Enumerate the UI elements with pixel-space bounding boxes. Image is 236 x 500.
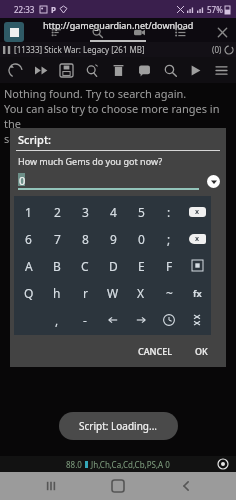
button[interactable]: Delete [107,59,129,81]
staticText: C [81,258,89,274]
staticText: http://gameguardian.net/download [43,19,194,31]
button[interactable]: Search [159,59,181,81]
button[interactable]: OK [187,341,216,361]
button[interactable]: Search [87,22,107,42]
button[interactable]: Key ; [155,225,183,252]
button[interactable]: App icon [4,22,24,42]
button[interactable]: Close [212,22,232,42]
button[interactable]: Key 9 [99,225,127,252]
button[interactable]: Forward [30,59,52,81]
staticText: F [166,258,173,274]
button[interactable]: Key 0 [127,225,155,252]
staticText: You can also try to choose more ranges i… [4,101,236,131]
button[interactable]: Key : [155,198,183,225]
staticText: [11333] Stick War: Legacy [261 MB] [14,44,145,55]
staticText: X [137,285,145,301]
staticText: (0) [212,44,222,55]
button[interactable]: Key 3 [71,198,99,225]
button[interactable]: Backspace [183,225,211,252]
staticText: Script: [18,132,52,147]
button[interactable]: Key W [99,279,127,306]
staticText: fx [193,287,202,299]
staticText: 0 [138,231,145,247]
button[interactable]: Visibility [218,459,228,469]
button[interactable]: CANCEL [130,341,181,361]
staticText: : [167,204,171,220]
button[interactable]: Dropdown [207,175,220,188]
button[interactable]: Edit [133,59,155,81]
button[interactable]: Collapse [183,306,211,333]
button[interactable]: Sort [46,22,66,42]
staticText: W [107,285,119,301]
staticText: Script: Loading... [79,419,158,433]
button[interactable]: Home [101,472,135,500]
staticText: OK [195,345,208,357]
staticText: r [83,285,88,301]
staticText: 0 [19,173,26,186]
staticText: B [53,258,61,274]
button[interactable]: Key 5 [127,198,155,225]
staticText: 8 [82,231,89,247]
button[interactable]: Backspace [183,198,211,225]
button[interactable]: Move right [127,306,155,333]
staticText: E [138,258,145,274]
staticText: Nothing found. Try to search again. [4,86,187,101]
staticText: 7 [54,231,61,247]
staticText: Find Tap Now [58,302,178,328]
staticText: Jh,Ch,Ca,Cd,Cb,PS,A 0 [91,459,170,470]
button[interactable]: Key F [155,252,183,279]
button[interactable]: Back [169,472,203,500]
button[interactable]: Select all [183,252,211,279]
staticText: 6 [25,231,32,247]
button[interactable]: Key B [43,252,71,279]
staticText: ; [167,231,171,247]
staticText: 3 [82,204,89,220]
staticText: 22:33 [14,4,35,15]
button[interactable]: Key h [43,279,71,306]
button[interactable]: Key C [71,252,99,279]
staticText: 4 [110,204,117,220]
button[interactable]: Refine search [81,59,103,81]
staticText: Tap to find values [81,334,155,346]
staticText: settings tab. [4,131,68,146]
button[interactable]: Play [184,59,206,81]
button[interactable]: Key - [71,306,99,333]
button[interactable]: Key 4 [99,198,127,225]
button[interactable]: Video [129,22,149,42]
button[interactable]: Key r [71,279,99,306]
button[interactable]: Move left [99,306,127,333]
button[interactable]: Key A [14,252,43,279]
button[interactable]: Key ~ [155,279,183,306]
staticText: CANCEL [138,345,173,357]
staticText: P [51,4,56,15]
button[interactable]: Key 7 [43,225,71,252]
button[interactable]: History [155,306,183,333]
staticText: Q [24,285,34,301]
staticText: , [55,312,59,328]
button[interactable]: Undo [4,59,26,81]
staticText: 5 [138,204,145,220]
staticText: A [25,258,33,274]
button[interactable]: Key Q [14,279,43,306]
staticText: ~ [166,285,173,301]
staticText: 2 [54,204,61,220]
button[interactable]: Save [55,59,77,81]
button[interactable]: Key 6 [14,225,43,252]
button[interactable]: Key 2 [43,198,71,225]
button[interactable]: Key fx [183,279,211,306]
staticText: 9 [110,231,117,247]
staticText: 88.0 [66,459,82,470]
staticText: x [195,207,200,217]
button[interactable]: Key D [99,252,127,279]
button[interactable]: Key 8 [71,225,99,252]
button[interactable]: Key 1 [14,198,43,225]
button[interactable]: Key , [43,306,71,333]
button[interactable]: Key X [127,279,155,306]
button[interactable]: List [170,22,190,42]
staticText: 1 [25,204,32,220]
staticText: - [83,312,87,328]
button[interactable]: Recent apps [34,472,68,500]
button[interactable]: Key E [127,252,155,279]
button[interactable]: Menu [210,59,232,81]
